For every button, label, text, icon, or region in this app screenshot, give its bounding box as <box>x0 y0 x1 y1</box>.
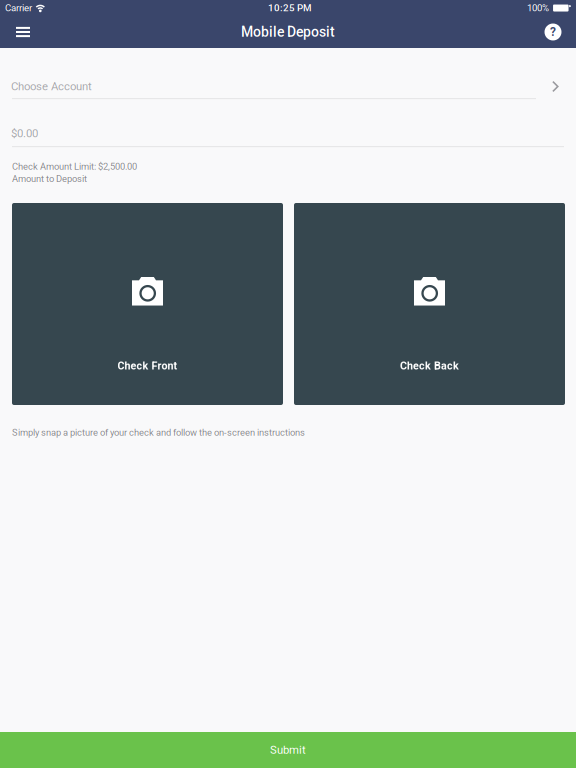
staticText: Simply snap a picture of your check and … <box>12 427 305 438</box>
staticText: Check Amount Limit: $2,500.00 <box>12 161 137 172</box>
button[interactable]: Help <box>530 16 576 48</box>
staticText: 100% <box>527 2 549 14</box>
button[interactable]: Submit <box>0 732 576 768</box>
staticText: 10:25 PM <box>268 2 312 14</box>
staticText: Check Front <box>117 360 177 372</box>
staticText: Amount to Deposit <box>12 173 87 184</box>
button[interactable]: Check Back <box>294 203 565 405</box>
staticText: ? <box>550 25 556 39</box>
staticText: Submit <box>270 743 306 757</box>
staticText: Carrier <box>5 2 32 14</box>
button[interactable]: Choose Account <box>0 50 576 99</box>
staticText: Choose Account <box>11 80 92 93</box>
button[interactable]: Check Front <box>12 203 283 405</box>
button[interactable]: Menu <box>0 16 46 48</box>
staticText: $0.00 <box>11 127 38 140</box>
staticText: Mobile Deposit <box>241 24 335 40</box>
staticText: Check Back <box>400 360 459 372</box>
